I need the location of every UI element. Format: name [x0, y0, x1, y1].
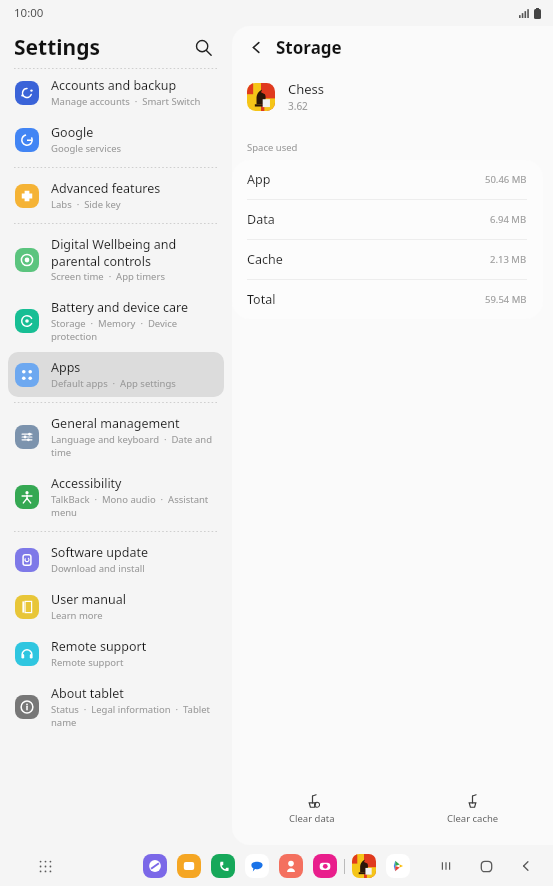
staticText: Clear cache: [447, 812, 499, 825]
staticText: 59.54 MB: [485, 293, 527, 306]
staticText: Battery and device care: [51, 299, 189, 316]
button[interactable]: Software update: [8, 537, 224, 582]
staticText: Learn more: [51, 609, 103, 622]
staticText: Cache: [247, 251, 283, 268]
button[interactable]: Advanced features: [8, 173, 224, 218]
button[interactable]: Clear cache: [392, 789, 553, 829]
staticText: Status · Legal information · Tablet name: [51, 703, 216, 729]
button[interactable]: Cache: [232, 240, 543, 279]
button[interactable]: App: [232, 160, 543, 199]
button[interactable]: camera: [313, 854, 337, 878]
button[interactable]: Back: [513, 853, 539, 879]
staticText: User manual: [51, 591, 126, 608]
staticText: General management: [51, 415, 180, 432]
staticText: 3.62: [288, 99, 308, 113]
staticText: Storage: [276, 36, 342, 59]
staticText: About tablet: [51, 685, 124, 702]
button[interactable]: Accounts and backup: [8, 70, 224, 115]
staticText: Clear data: [289, 812, 335, 825]
button[interactable]: Back: [242, 33, 270, 61]
button[interactable]: Search: [188, 32, 218, 62]
button[interactable]: Accessibility: [8, 468, 224, 526]
button[interactable]: Home: [473, 853, 499, 879]
staticText: Data: [247, 211, 275, 228]
staticText: Google services: [51, 142, 122, 155]
staticText: Google: [51, 124, 94, 141]
button[interactable]: Chess: [352, 854, 376, 878]
button[interactable]: Google: [8, 117, 224, 162]
button[interactable]: All apps: [32, 853, 58, 879]
button[interactable]: User manual: [8, 584, 224, 629]
staticText: App: [247, 171, 271, 188]
staticText: 6.94 MB: [490, 213, 527, 226]
button[interactable]: internet: [143, 854, 167, 878]
staticText: Screen time · App timers: [51, 270, 165, 283]
staticText: Accessibility: [51, 475, 122, 492]
staticText: Labs · Side key: [51, 198, 121, 211]
button[interactable]: Clear data: [232, 789, 392, 829]
staticText: TalkBack · Mono audio · Assistant menu: [51, 493, 216, 519]
staticText: Settings: [14, 33, 101, 62]
staticText: Manage accounts · Smart Switch: [51, 95, 201, 108]
staticText: Download and install: [51, 562, 145, 575]
button[interactable]: contacts: [279, 854, 303, 878]
button[interactable]: General management: [8, 408, 224, 466]
staticText: Space used: [247, 141, 298, 154]
staticText: Total: [247, 291, 276, 308]
staticText: 2.13 MB: [490, 253, 527, 266]
staticText: Language and keyboard · Date and time: [51, 433, 216, 459]
staticText: Apps: [51, 359, 81, 376]
staticText: Accounts and backup: [51, 77, 177, 94]
button[interactable]: messages: [245, 854, 269, 878]
button[interactable]: phone: [211, 854, 235, 878]
staticText: Storage · Memory · Device protection: [51, 317, 216, 343]
button[interactable]: play: [386, 854, 410, 878]
button[interactable]: Apps: [8, 352, 224, 397]
staticText: Default apps · App settings: [51, 377, 176, 390]
staticText: 10:00: [14, 5, 44, 21]
button[interactable]: Remote support: [8, 631, 224, 676]
button[interactable]: Recents: [433, 853, 459, 879]
staticText: 50.46 MB: [485, 173, 527, 186]
staticText: Software update: [51, 544, 148, 561]
button[interactable]: myfiles: [177, 854, 201, 878]
button[interactable]: About tablet: [8, 678, 224, 736]
staticText: Advanced features: [51, 180, 161, 197]
staticText: Chess: [288, 80, 325, 98]
staticText: Digital Wellbeing and parental controls: [51, 236, 216, 269]
staticText: Remote support: [51, 638, 147, 655]
button[interactable]: Digital Wellbeing and parental controls: [8, 229, 224, 290]
button[interactable]: Battery and device care: [8, 292, 224, 350]
button[interactable]: Data: [232, 200, 543, 239]
staticText: Remote support: [51, 656, 124, 669]
button[interactable]: Total: [232, 280, 543, 319]
